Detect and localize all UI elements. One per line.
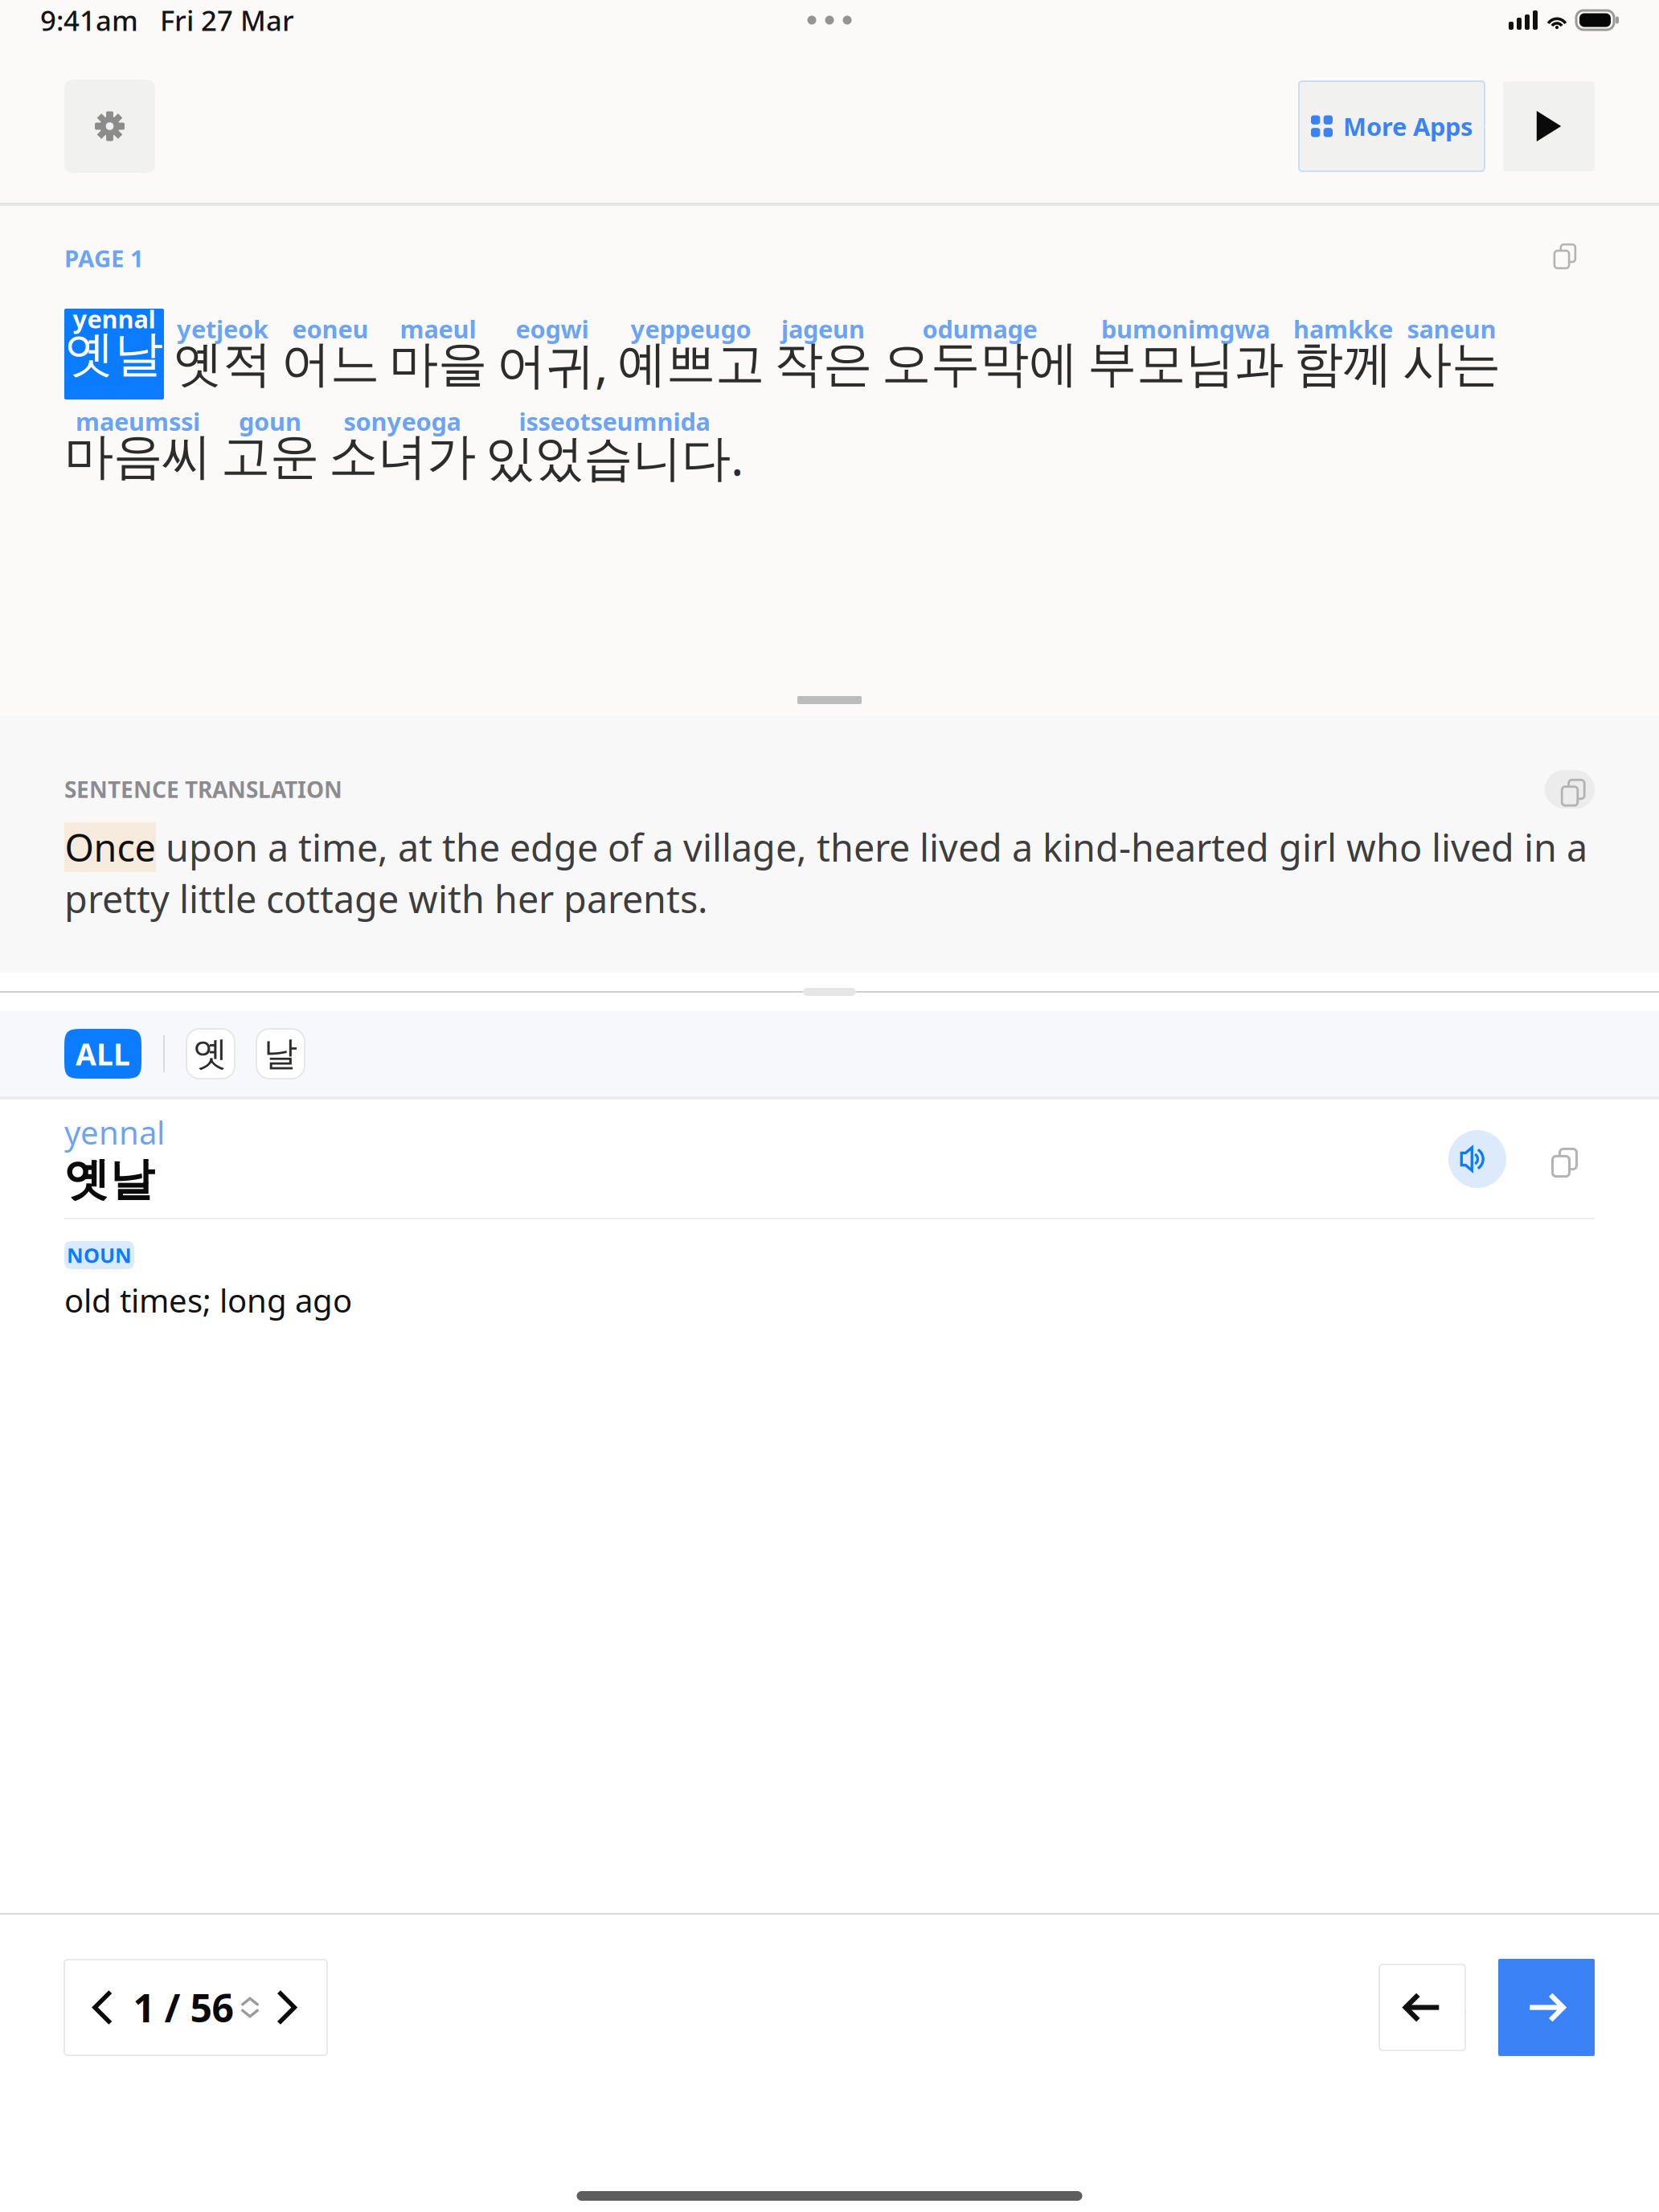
- staticText: upon a time, at the edge of a village, t…: [156, 822, 1587, 872]
- staticText: 예쁘고: [617, 334, 764, 394]
- staticText: 어귀,: [497, 331, 608, 397]
- button[interactable]: Next page: [1498, 1959, 1595, 2056]
- button[interactable]: Play story: [1503, 81, 1595, 171]
- staticText: maeul: [400, 312, 476, 345]
- button[interactable]: Copy word: [1540, 1138, 1595, 1180]
- staticText: 날: [263, 1033, 298, 1075]
- staticText: eogwi: [516, 312, 589, 345]
- staticText: goun: [239, 405, 301, 437]
- button[interactable]: 날: [256, 1029, 305, 1079]
- staticText: eoneu: [292, 312, 369, 345]
- staticText: More Apps: [1343, 110, 1473, 143]
- staticText: 사는: [1403, 334, 1501, 394]
- staticText: 옛적: [174, 334, 272, 394]
- button[interactable]: Play pronunciation: [1448, 1130, 1506, 1188]
- staticText: yetjeok: [177, 312, 268, 345]
- staticText: 부모님과: [1088, 334, 1284, 394]
- staticText: odumage: [922, 312, 1037, 345]
- staticText: PAGE 1: [64, 242, 144, 274]
- staticText: yeppeugo: [631, 312, 751, 345]
- staticText: hamkke: [1293, 312, 1393, 345]
- button[interactable]: 1 / 56: [64, 1960, 327, 2055]
- staticText: Once: [65, 822, 156, 872]
- button[interactable]: ALL: [64, 1029, 141, 1079]
- staticText: pretty little cottage with her parents.: [64, 874, 708, 924]
- staticText: 소녀가: [329, 426, 476, 487]
- staticText: 1 / 56: [133, 1982, 234, 2033]
- staticText: 마음씨: [64, 426, 211, 487]
- staticText: 옛날: [64, 1152, 154, 1207]
- button[interactable]: Copy page text: [1544, 236, 1595, 281]
- staticText: 어느: [281, 334, 379, 394]
- staticText: 9:41am: [40, 2, 138, 39]
- staticText: NOUN: [67, 1242, 132, 1269]
- staticText: yennal: [64, 1111, 165, 1154]
- staticText: maeumssi: [76, 405, 200, 437]
- staticText: yennal: [73, 302, 156, 335]
- staticText: 옛날: [65, 324, 163, 384]
- staticText: 마을: [389, 334, 487, 394]
- staticText: isseotseumnida: [519, 405, 710, 437]
- button[interactable]: Settings: [64, 80, 155, 173]
- staticText: bumonimgwa: [1101, 312, 1270, 345]
- staticText: 있었습니다.: [485, 424, 743, 489]
- staticText: jageun: [781, 312, 865, 345]
- button[interactable]: Previous page: [1379, 1964, 1465, 2050]
- button[interactable]: Copy translation: [1545, 770, 1595, 809]
- staticText: ALL: [76, 1034, 130, 1074]
- staticText: 오두막에: [882, 334, 1078, 394]
- staticText: 옛: [193, 1033, 228, 1075]
- staticText: 함께: [1294, 334, 1392, 394]
- staticText: saneun: [1407, 312, 1496, 345]
- staticText: SENTENCE TRANSLATION: [64, 774, 342, 804]
- staticText: sonyeoga: [344, 405, 461, 437]
- button[interactable]: More Apps: [1299, 81, 1485, 171]
- staticText: 작은: [774, 334, 872, 394]
- button[interactable]: 옛: [186, 1029, 235, 1079]
- staticText: old times; long ago: [64, 1279, 352, 1321]
- staticText: Fri 27 Mar: [138, 2, 294, 39]
- staticText: 고운: [221, 426, 319, 487]
